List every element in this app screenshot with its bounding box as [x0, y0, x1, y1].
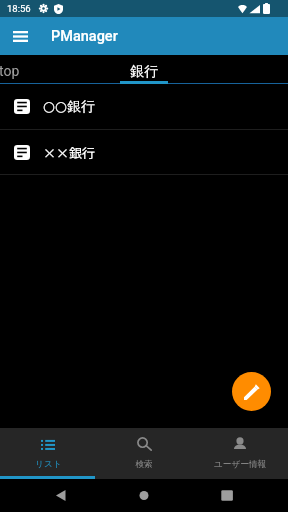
- button[interactable]: ○○銀行: [0, 84, 288, 129]
- staticText: ○○銀行: [43, 98, 95, 115]
- staticText: リスト: [35, 459, 62, 470]
- staticText: ××銀行: [43, 143, 96, 162]
- button[interactable]: Edit: [232, 372, 271, 411]
- button[interactable]: Menu: [5, 21, 35, 51]
- staticText: 銀行: [130, 63, 158, 81]
- button[interactable]: ユーザー情報: [192, 428, 288, 479]
- staticText: 検索: [135, 459, 153, 470]
- staticText: PManager: [51, 28, 118, 45]
- button[interactable]: リスト: [0, 428, 96, 479]
- button[interactable]: 検索: [96, 428, 192, 479]
- button[interactable]: ××銀行: [0, 130, 288, 174]
- button[interactable]: top: [0, 55, 57, 84]
- staticText: top: [0, 63, 20, 79]
- button[interactable]: 銀行: [96, 55, 192, 84]
- staticText: 18:56: [7, 3, 31, 14]
- staticText: ユーザー情報: [214, 459, 266, 470]
